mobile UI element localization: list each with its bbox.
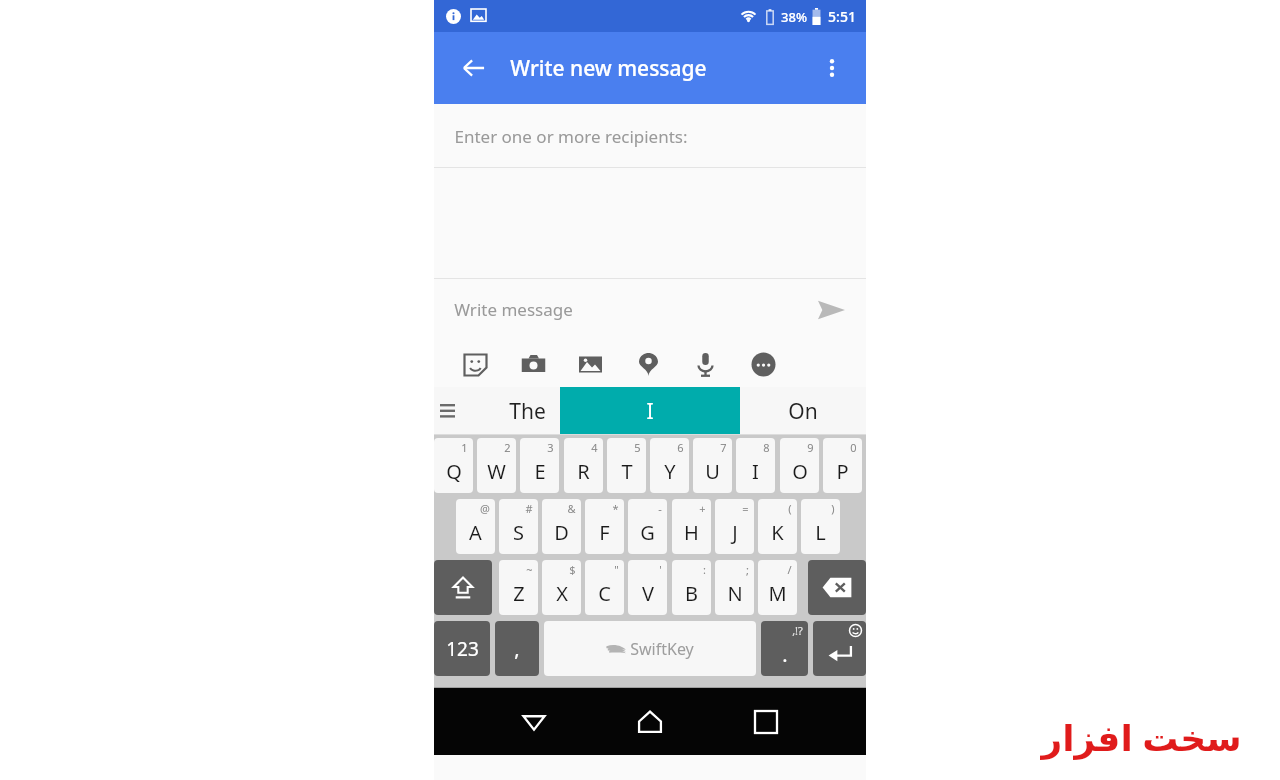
button[interactable]: ~ <box>499 560 538 615</box>
button[interactable]: ; <box>715 560 754 615</box>
staticText: W <box>487 458 506 485</box>
staticText: F <box>599 519 610 546</box>
staticText: 6 <box>677 440 684 455</box>
button[interactable]: Send <box>810 289 852 331</box>
button[interactable]: * <box>585 499 624 554</box>
staticText: X <box>556 580 568 607</box>
button[interactable]: Recent apps <box>740 696 792 748</box>
staticText: O <box>792 458 808 485</box>
button[interactable]: 4 <box>564 438 603 493</box>
button[interactable]: More options <box>810 46 854 90</box>
button[interactable]: & <box>542 499 581 554</box>
staticText: 4 <box>591 440 598 455</box>
button[interactable]: 2 <box>477 438 516 493</box>
button[interactable]: ,!? <box>761 621 808 676</box>
staticText: @ <box>480 501 490 516</box>
staticText: 5:51 <box>828 7 856 26</box>
button[interactable]: Backspace <box>808 560 866 615</box>
staticText: J <box>732 519 738 546</box>
button[interactable]: = <box>715 499 754 554</box>
staticText: 7 <box>720 440 727 455</box>
button[interactable]: @ <box>456 499 495 554</box>
staticText: Y <box>664 458 676 485</box>
button[interactable]: " <box>585 560 624 615</box>
button[interactable]: - <box>628 499 667 554</box>
button[interactable]: The <box>460 387 594 435</box>
button[interactable]: Camera <box>513 344 553 384</box>
button[interactable]: 7 <box>693 438 732 493</box>
button[interactable]: 9 <box>780 438 819 493</box>
staticText: - <box>658 501 662 516</box>
staticText: L <box>815 519 826 546</box>
staticText: Q <box>446 458 462 485</box>
button[interactable]: ' <box>628 560 667 615</box>
staticText: The <box>509 397 546 426</box>
button[interactable]: 123 <box>434 621 490 676</box>
staticText: ; <box>746 562 749 577</box>
staticText: M <box>768 580 787 607</box>
staticText: * <box>612 501 619 516</box>
staticText: 1 <box>461 440 468 455</box>
button[interactable]: More <box>743 344 783 384</box>
staticText: = <box>742 501 749 516</box>
staticText: U <box>705 458 720 485</box>
staticText: ~ <box>526 562 533 577</box>
button[interactable]: 3 <box>520 438 559 493</box>
staticText: I <box>646 397 654 426</box>
button[interactable]: , <box>495 621 539 676</box>
button[interactable]: Location <box>628 344 668 384</box>
staticText: ' <box>659 562 662 577</box>
button[interactable]: Space <box>544 621 756 676</box>
button[interactable]: Voice <box>685 344 725 384</box>
button[interactable]: Stickers <box>455 344 495 384</box>
staticText: D <box>554 519 569 546</box>
staticText: SwiftKey <box>630 638 694 660</box>
staticText: On <box>788 397 818 426</box>
button[interactable]: On <box>740 387 866 435</box>
button[interactable]: + <box>672 499 711 554</box>
button[interactable]: Keyboard menu <box>434 391 460 431</box>
staticText: 3 <box>547 440 554 455</box>
staticText: 5 <box>634 440 641 455</box>
staticText: : <box>703 562 706 577</box>
staticText: , <box>514 635 520 662</box>
button[interactable]: : <box>672 560 711 615</box>
staticText: B <box>685 580 698 607</box>
button[interactable]: $ <box>542 560 581 615</box>
staticText: V <box>642 580 654 607</box>
button[interactable]: 6 <box>650 438 689 493</box>
staticText: G <box>640 519 655 546</box>
button[interactable]: I <box>560 387 740 435</box>
staticText: Enter one or more recipients: <box>454 125 688 148</box>
button[interactable]: 5 <box>607 438 646 493</box>
staticText: Z <box>513 580 525 607</box>
button[interactable]: Back <box>508 696 560 748</box>
staticText: $ <box>569 562 576 577</box>
button[interactable]: Home <box>624 696 676 748</box>
button[interactable]: / <box>758 560 797 615</box>
button[interactable]: ( <box>758 499 797 554</box>
button[interactable]: Write message <box>454 298 573 321</box>
staticText: I <box>752 458 759 485</box>
button[interactable]: Back <box>452 46 496 90</box>
staticText: 123 <box>446 636 479 662</box>
staticText: . <box>782 641 788 668</box>
staticText: 0 <box>850 440 857 455</box>
staticText: Write message <box>454 298 573 321</box>
staticText: # <box>525 501 533 516</box>
button[interactable]: ) <box>801 499 840 554</box>
staticText: " <box>614 562 619 577</box>
button[interactable]: 1 <box>434 438 473 493</box>
staticText: N <box>727 580 743 607</box>
button[interactable]: Enter <box>813 621 866 676</box>
staticText: 2 <box>504 440 511 455</box>
staticText: سخت افزار <box>1041 713 1242 762</box>
button[interactable]: Shift <box>434 560 492 615</box>
button[interactable]: Enter one or more recipients: <box>434 104 866 168</box>
button[interactable]: # <box>499 499 538 554</box>
staticText: H <box>684 519 699 546</box>
button[interactable]: 8 <box>736 438 775 493</box>
button[interactable]: Gallery <box>570 344 610 384</box>
staticText: E <box>534 458 546 485</box>
button[interactable]: 0 <box>823 438 862 493</box>
